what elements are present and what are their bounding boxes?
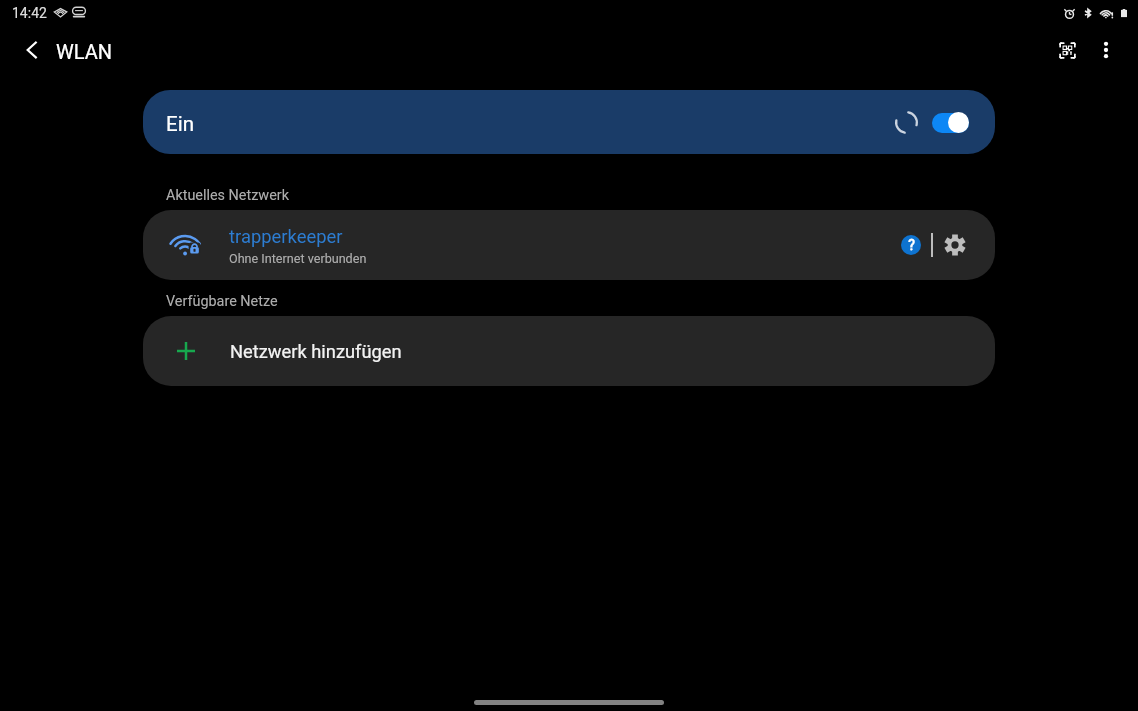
button[interactable]: Network settings [933,223,977,267]
button[interactable]: Scan QR code [1037,27,1083,73]
staticText: Ohne Internet verbunden [229,251,367,266]
button[interactable]: Back [9,27,55,73]
staticText: ? [908,237,915,253]
button[interactable]: Wi-Fi on [932,109,969,136]
staticText: 14:42 [12,5,47,21]
staticText: Aktuelles Netzwerk [166,187,289,204]
button[interactable]: More options [1083,27,1129,73]
button[interactable]: Ein [143,90,995,154]
staticText: trapperkeeper [229,226,343,248]
button[interactable]: trapperkeeper [143,210,995,280]
staticText: Verfügbare Netze [166,293,278,310]
button[interactable]: Help [891,225,931,265]
staticText: WLAN [56,40,113,63]
staticText: Netzwerk hinzufügen [230,341,402,362]
button[interactable]: Netzwerk hinzufügen [143,316,995,386]
staticText: Ein [166,112,194,136]
